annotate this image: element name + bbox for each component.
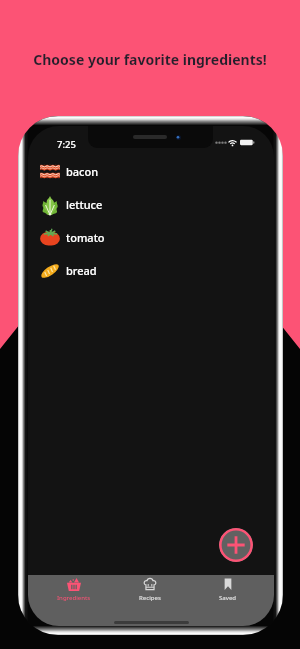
staticText: lettuce [66, 197, 103, 212]
staticText: bacon [66, 164, 99, 179]
button[interactable]: Add ingredient [219, 528, 253, 562]
button[interactable]: Ingredients [35, 575, 113, 607]
staticText: bread [66, 263, 97, 278]
staticText: Ingredients [57, 594, 91, 602]
button[interactable]: lettuce [28, 188, 274, 221]
button[interactable]: tomato [28, 221, 274, 254]
staticText: tomato [66, 230, 105, 245]
button[interactable]: Recipes [111, 575, 189, 607]
staticText: Saved [219, 594, 237, 602]
staticText: Choose your favorite ingredients! [0, 50, 300, 69]
staticText: Recipes [139, 594, 161, 602]
staticText: 7:25 [57, 138, 76, 151]
button[interactable]: bacon [28, 155, 274, 188]
button[interactable]: Saved [189, 575, 267, 607]
button[interactable]: bread [28, 254, 274, 287]
